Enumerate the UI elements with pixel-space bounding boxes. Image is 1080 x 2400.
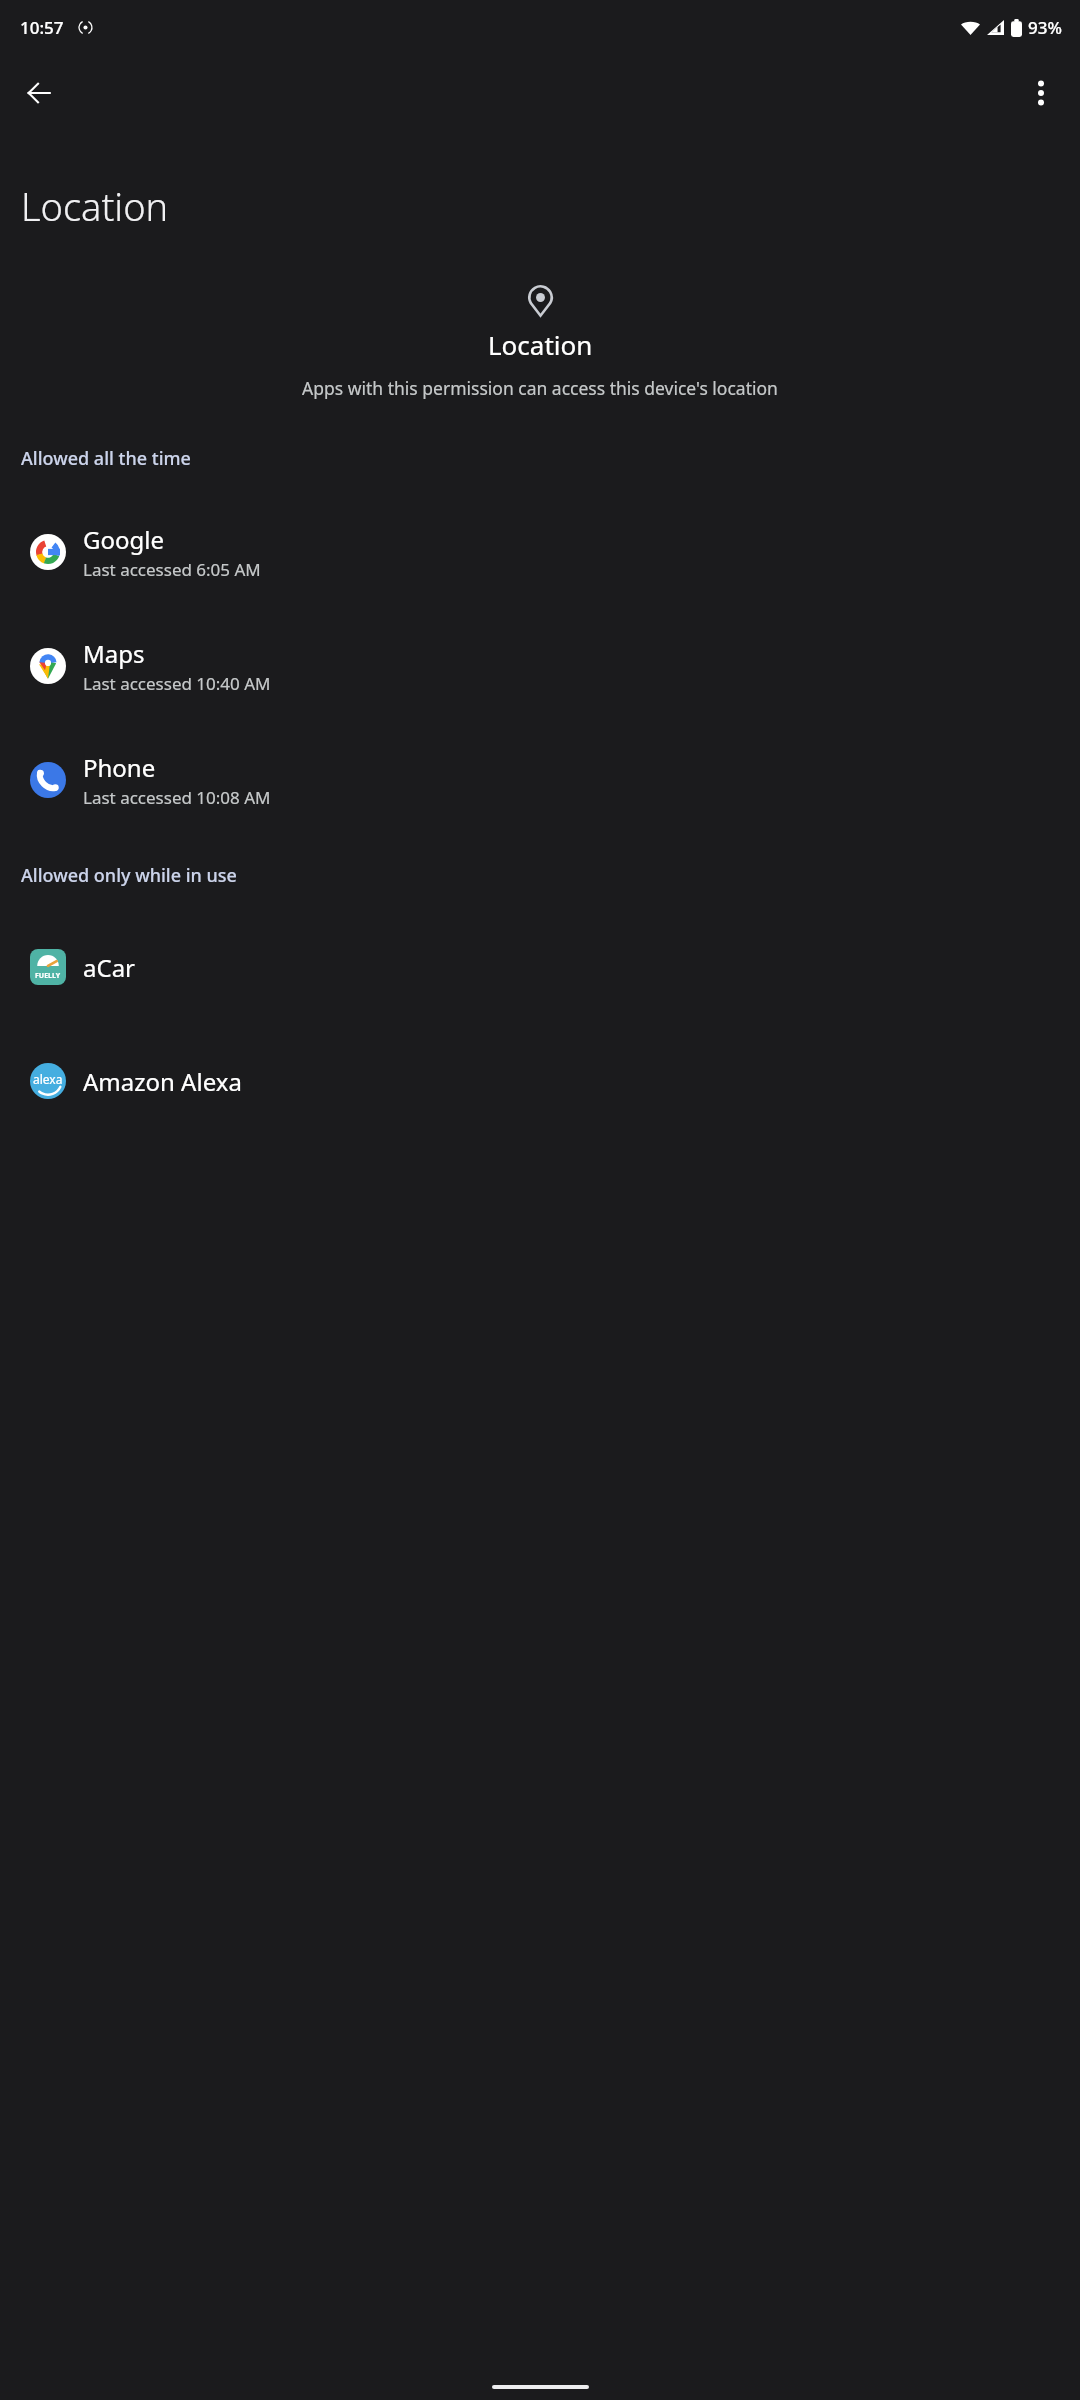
staticText: 10:57 xyxy=(20,16,64,39)
button[interactable]: Maps xyxy=(0,609,1080,723)
button[interactable]: alexa xyxy=(0,1024,1080,1138)
staticText: Maps xyxy=(83,637,145,670)
staticText: Location xyxy=(488,327,593,362)
button[interactable]: Back xyxy=(12,66,66,120)
staticText: Allowed all the time xyxy=(21,446,191,471)
staticText: Last accessed 6:05 AM xyxy=(83,558,261,581)
button[interactable]: Google xyxy=(0,495,1080,609)
staticText: Apps with this permission can access thi… xyxy=(302,376,778,400)
button[interactable]: FUELLY xyxy=(0,910,1080,1024)
staticText: Allowed only while in use xyxy=(21,863,237,888)
button[interactable]: More options xyxy=(1014,66,1068,120)
staticText: Phone xyxy=(83,751,156,784)
staticText: alexa xyxy=(33,1071,63,1087)
staticText: Google xyxy=(83,523,164,556)
staticText: FUELLY xyxy=(35,971,61,981)
staticText: Location xyxy=(21,180,169,232)
staticText: 93% xyxy=(1028,16,1062,39)
staticText: Last accessed 10:08 AM xyxy=(83,786,271,809)
staticText: aCar xyxy=(83,951,136,984)
staticText: Last accessed 10:40 AM xyxy=(83,672,271,695)
staticText: Amazon Alexa xyxy=(83,1065,242,1098)
button[interactable]: Phone xyxy=(0,723,1080,837)
